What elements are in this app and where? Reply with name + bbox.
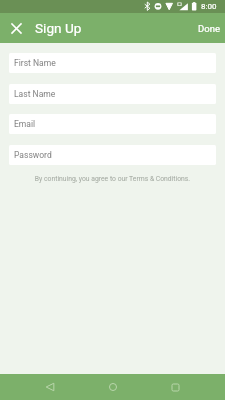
staticText: Done: [198, 23, 220, 34]
staticText: First Name: [14, 58, 56, 68]
button[interactable]: Close: [6, 18, 26, 38]
staticText: 8:00: [201, 2, 217, 11]
button[interactable]: Back: [37, 374, 63, 400]
staticText: Last Name: [14, 89, 56, 99]
button[interactable]: First Name: [9, 53, 216, 73]
staticText: Sign Up: [35, 20, 82, 36]
staticText: By continuing, you agree to our Terms & …: [0, 175, 225, 183]
button[interactable]: Home: [100, 374, 126, 400]
button[interactable]: Last Name: [9, 84, 216, 104]
button[interactable]: Password: [9, 145, 216, 165]
button[interactable]: Email: [9, 114, 216, 134]
button[interactable]: Recents: [162, 374, 188, 400]
staticText: Password: [14, 150, 52, 160]
staticText: Email: [14, 119, 36, 129]
button[interactable]: Done: [189, 13, 225, 43]
